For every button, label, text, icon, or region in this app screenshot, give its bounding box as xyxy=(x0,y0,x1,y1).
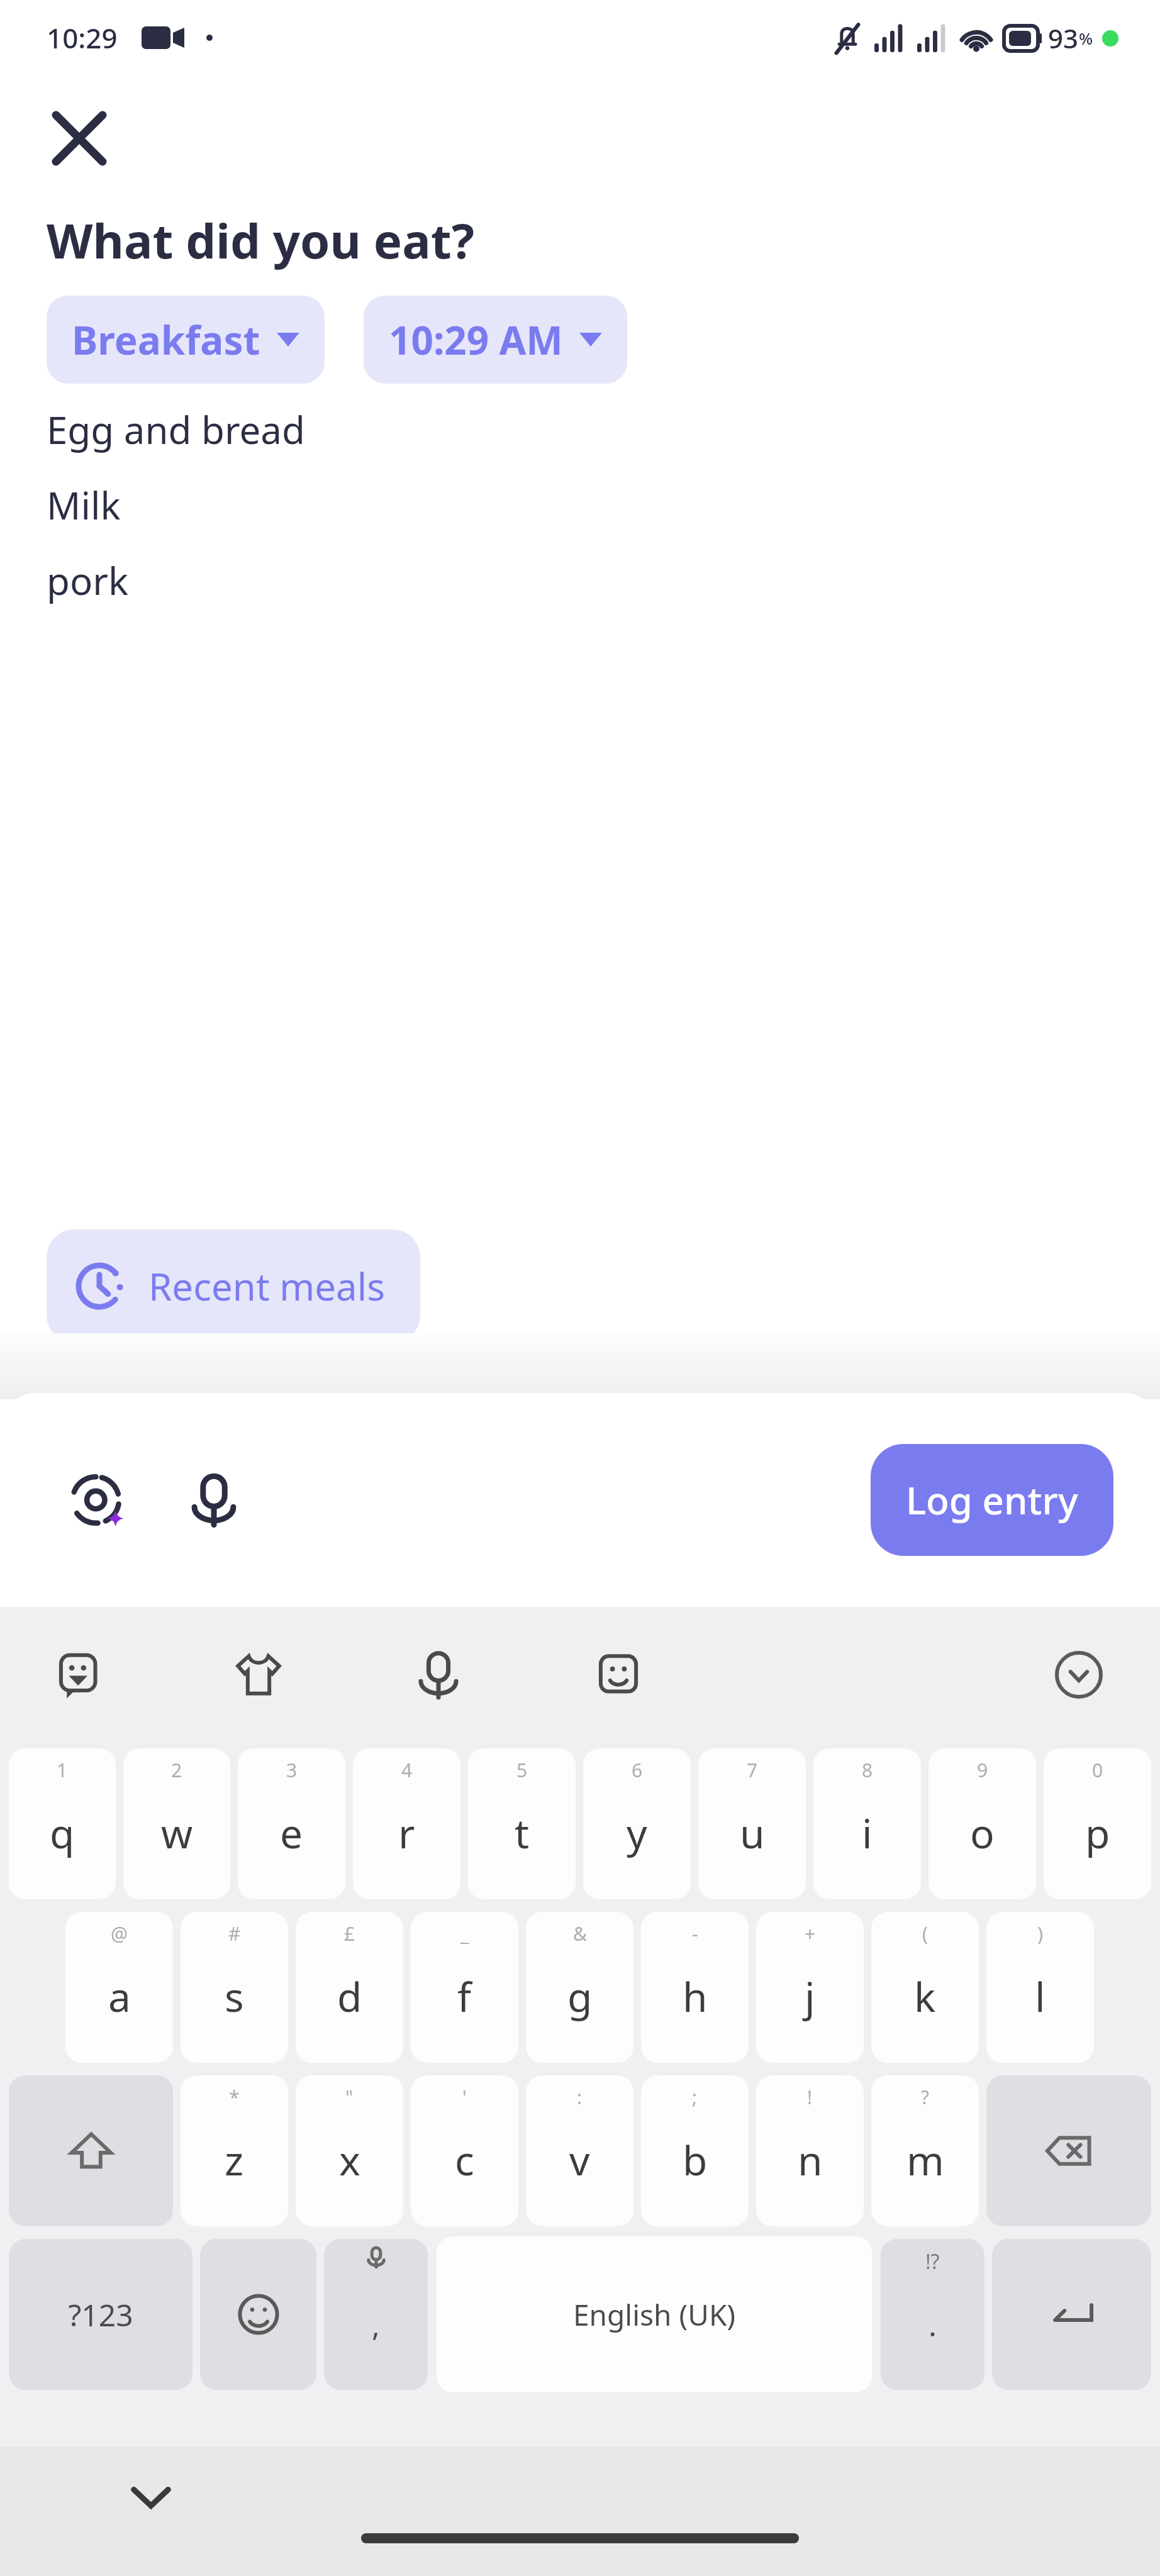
button[interactable]: : xyxy=(526,2075,633,2226)
button[interactable]: ? xyxy=(871,2075,979,2226)
staticText: % xyxy=(1079,27,1093,49)
staticText: 7 xyxy=(747,1757,758,1783)
staticText: pork xyxy=(47,555,129,606)
button[interactable]: ?123 xyxy=(9,2239,192,2390)
staticText: w xyxy=(161,1806,193,1860)
button[interactable]: - xyxy=(641,1912,749,2063)
staticText: + xyxy=(805,1921,816,1946)
staticText: ; xyxy=(692,2084,698,2110)
button[interactable]: !? xyxy=(881,2239,984,2390)
staticText: d xyxy=(337,1969,362,2024)
button[interactable]: Hide keyboard xyxy=(113,2459,189,2534)
button[interactable]: 6 xyxy=(583,1748,691,1899)
button[interactable]: 9 xyxy=(929,1748,1036,1899)
staticText: h xyxy=(683,1969,708,2024)
staticText: " xyxy=(345,2084,354,2110)
staticText: 6 xyxy=(632,1757,643,1783)
button[interactable]: @ xyxy=(65,1912,173,2063)
staticText: ' xyxy=(462,2084,467,2110)
staticText: - xyxy=(692,1921,698,1946)
staticText: Breakfast xyxy=(72,313,260,366)
button[interactable]: Recent meals xyxy=(47,1230,420,1343)
staticText: l xyxy=(1035,1969,1046,2024)
button[interactable]: Stickers xyxy=(44,1640,113,1709)
staticText: 1 xyxy=(57,1757,68,1783)
staticText: . xyxy=(929,2304,937,2345)
button[interactable]: Voice input xyxy=(176,1462,252,1538)
button[interactable]: Log entry xyxy=(871,1444,1113,1556)
button[interactable]: 7 xyxy=(698,1748,806,1899)
button[interactable]: Enter xyxy=(992,2239,1151,2390)
button[interactable]: 10:29 AM xyxy=(364,296,627,384)
staticText: x xyxy=(339,2133,360,2187)
button[interactable]: Emoji xyxy=(584,1640,653,1709)
button[interactable]: Voice typing xyxy=(404,1640,473,1709)
button[interactable]: £ xyxy=(296,1912,403,2063)
button[interactable]: # xyxy=(181,1912,288,2063)
button[interactable]: " xyxy=(296,2075,403,2226)
button[interactable]: 3 xyxy=(238,1748,345,1899)
staticText: What did you eat? xyxy=(47,208,474,273)
staticText: q xyxy=(50,1806,75,1860)
staticText: o xyxy=(970,1806,995,1860)
staticText: u xyxy=(740,1806,765,1860)
button[interactable]: Themes xyxy=(224,1640,293,1709)
button[interactable]: ( xyxy=(871,1912,979,2063)
staticText: ?123 xyxy=(68,2294,133,2335)
button[interactable]: ; xyxy=(641,2075,749,2226)
staticText: Log entry xyxy=(906,1474,1078,1526)
staticText: # xyxy=(228,1921,241,1946)
staticText: 3 xyxy=(286,1757,298,1783)
button[interactable]: _ xyxy=(411,1912,518,2063)
staticText: j xyxy=(805,1969,815,2024)
button[interactable]: 0 xyxy=(1044,1748,1151,1899)
button[interactable]: Scan food with camera xyxy=(60,1462,136,1538)
staticText: 10:29 xyxy=(47,19,118,57)
button[interactable]: Collapse toolbar xyxy=(1044,1640,1113,1709)
staticText: 0 xyxy=(1092,1757,1103,1783)
staticText: v xyxy=(569,2133,590,2187)
staticText: _ xyxy=(460,1921,469,1946)
button[interactable]: ' xyxy=(411,2075,518,2226)
staticText: ! xyxy=(807,2084,813,2110)
staticText: m xyxy=(906,2133,944,2187)
button[interactable]: Close xyxy=(35,94,123,182)
button[interactable]: 1 xyxy=(9,1748,116,1899)
staticText: z xyxy=(225,2133,244,2187)
staticText: @ xyxy=(111,1921,128,1946)
staticText: Recent meals xyxy=(148,1260,385,1312)
button[interactable]: 5 xyxy=(468,1748,576,1899)
button[interactable]: * xyxy=(181,2075,288,2226)
staticText: y xyxy=(627,1806,647,1860)
staticText: t xyxy=(515,1806,530,1860)
button[interactable]: ) xyxy=(986,1912,1094,2063)
button[interactable]: Breakfast xyxy=(47,296,325,384)
button[interactable]: 8 xyxy=(813,1748,921,1899)
staticText: 93 xyxy=(1048,20,1079,56)
staticText: e xyxy=(280,1806,303,1860)
staticText: Egg and bread xyxy=(47,404,305,455)
button[interactable]: 2 xyxy=(123,1748,230,1899)
staticText: i xyxy=(862,1806,873,1860)
button[interactable]: + xyxy=(756,1912,864,2063)
staticText: r xyxy=(398,1806,415,1860)
button[interactable]: 4 xyxy=(353,1748,460,1899)
staticText: ) xyxy=(1037,1921,1043,1946)
button[interactable]: Shift xyxy=(9,2075,173,2226)
staticText: , xyxy=(372,2304,380,2345)
button[interactable]: , xyxy=(324,2239,428,2390)
button[interactable]: ! xyxy=(756,2075,864,2226)
staticText: ( xyxy=(922,1921,928,1946)
button[interactable]: Backspace xyxy=(986,2075,1151,2226)
staticText: 8 xyxy=(862,1757,873,1783)
staticText: g xyxy=(567,1969,593,2024)
staticText: c xyxy=(455,2133,474,2187)
staticText: Milk xyxy=(47,479,121,531)
button[interactable]: English (UK) xyxy=(437,2236,872,2392)
staticText: b xyxy=(683,2133,708,2187)
button[interactable]: & xyxy=(526,1912,633,2063)
staticText: * xyxy=(229,2084,240,2110)
staticText: 4 xyxy=(401,1757,413,1783)
staticText: n xyxy=(798,2133,823,2187)
button[interactable]: Emoji keyboard xyxy=(200,2239,316,2390)
